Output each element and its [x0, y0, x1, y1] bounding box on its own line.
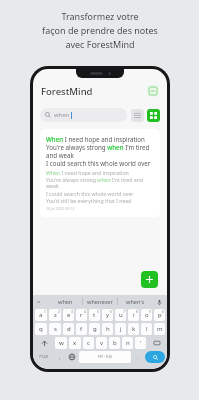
button[interactable]: o [141, 309, 152, 321]
staticText: when's [126, 298, 145, 306]
button[interactable]: r [76, 309, 87, 321]
staticText: o [145, 311, 149, 319]
button[interactable]: Change language [65, 351, 78, 363]
button[interactable]: u [115, 309, 126, 321]
button[interactable]: b [109, 337, 120, 349]
button[interactable]: Search [145, 351, 165, 363]
staticText: 5 [97, 310, 99, 314]
staticText: i [133, 311, 135, 319]
button[interactable]: f [76, 323, 87, 335]
button[interactable]: when [48, 295, 82, 308]
staticText: 16 Jul 2023 09:12 [46, 206, 75, 211]
staticText: 2 [58, 310, 60, 314]
button[interactable]: k [128, 323, 139, 335]
button[interactable]: v [96, 337, 107, 349]
staticText: ' [140, 339, 142, 347]
button[interactable]: g [89, 323, 100, 335]
button[interactable]: p [154, 309, 165, 321]
staticText: 1 [44, 310, 46, 314]
staticText: When I need hope and inspiration [46, 135, 145, 143]
button[interactable]: t [89, 309, 100, 321]
button[interactable]: l [141, 323, 152, 335]
button[interactable]: FR · EN [79, 351, 131, 363]
staticText: l [146, 325, 148, 333]
staticText: 7 [123, 310, 125, 314]
staticText: y [106, 311, 110, 319]
button[interactable]: Emoji [54, 351, 65, 363]
staticText: You're always strong when I'm tired and … [46, 176, 154, 190]
staticText: ?123 [39, 354, 49, 360]
button[interactable]: h [102, 323, 113, 335]
staticText: 6 [110, 310, 112, 314]
button[interactable]: Notes menu [147, 85, 159, 97]
button[interactable]: when's [118, 295, 152, 308]
staticText: m [157, 325, 163, 333]
staticText: d [67, 325, 71, 333]
staticText: e [67, 311, 71, 319]
staticText: whenever [87, 298, 113, 306]
staticText: when [54, 111, 70, 119]
staticText: s [54, 325, 57, 333]
staticText: r [80, 311, 83, 319]
staticText: You'd still be everything that I need [46, 197, 132, 204]
button[interactable]: When I need hope and inspiration [40, 129, 160, 217]
button[interactable]: c [83, 337, 94, 349]
staticText: p [158, 311, 162, 319]
button[interactable]: Voice input [155, 298, 163, 306]
button[interactable]: . [132, 351, 144, 363]
staticText: 8 [136, 310, 138, 314]
staticText: 9 [149, 310, 151, 314]
staticText: t [93, 311, 96, 319]
staticText: v [100, 339, 104, 347]
staticText: I could search this whole world over [46, 190, 134, 197]
staticText: f [80, 325, 83, 333]
button[interactable]: m [154, 323, 165, 335]
button[interactable]: Grid view [147, 109, 160, 122]
button[interactable]: z [49, 309, 61, 321]
button[interactable]: i [128, 309, 139, 321]
button[interactable]: when [40, 108, 127, 122]
button[interactable]: x [69, 337, 81, 349]
button[interactable]: s [49, 323, 61, 335]
button[interactable]: a [35, 309, 47, 321]
staticText: ForestMind [41, 85, 93, 98]
button[interactable]: ?123 [35, 351, 53, 363]
staticText: , [59, 354, 61, 361]
button[interactable]: ' [135, 337, 146, 349]
staticText: FR · EN [98, 354, 112, 360]
staticText: k [132, 325, 136, 333]
staticText: Transformez votre [61, 10, 139, 22]
button[interactable]: > [37, 298, 41, 306]
button[interactable]: j [115, 323, 126, 335]
staticText: . [137, 354, 139, 361]
button[interactable]: e [63, 309, 74, 321]
button[interactable]: q [35, 323, 47, 335]
staticText: c [87, 339, 90, 347]
button[interactable]: y [102, 309, 113, 321]
staticText: n [126, 339, 130, 347]
button[interactable]: d [63, 323, 74, 335]
staticText: when [58, 298, 73, 306]
staticText: When I need hope and inspiration [46, 169, 129, 176]
staticText: x [73, 339, 77, 347]
staticText: 3 [71, 310, 73, 314]
staticText: a [39, 311, 43, 319]
button[interactable]: Backspace [148, 337, 165, 349]
button[interactable]: whenever [83, 295, 117, 308]
staticText: h [106, 325, 110, 333]
staticText: j [120, 325, 122, 333]
staticText: w [59, 339, 64, 347]
button[interactable]: List view [131, 109, 144, 122]
staticText: 4 [84, 310, 86, 314]
staticText: I could search this whole world over [46, 159, 151, 167]
staticText: g [93, 325, 97, 333]
staticText: façon de prendre des notes [42, 24, 158, 36]
button[interactable]: n [122, 337, 133, 349]
staticText: You're always strong when I'm tired and … [46, 143, 154, 159]
staticText: z [54, 311, 57, 319]
button[interactable]: Shift [35, 337, 53, 349]
staticText: avec ForestMind [65, 38, 135, 50]
button[interactable]: w [55, 337, 67, 349]
button[interactable]: Add note [141, 271, 158, 288]
staticText: q [39, 325, 43, 333]
